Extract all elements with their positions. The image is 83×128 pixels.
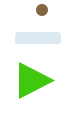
button[interactable]: Details [15, 32, 61, 44]
button[interactable]: Artwork [36, 4, 48, 16]
button[interactable]: Play [19, 62, 55, 99]
